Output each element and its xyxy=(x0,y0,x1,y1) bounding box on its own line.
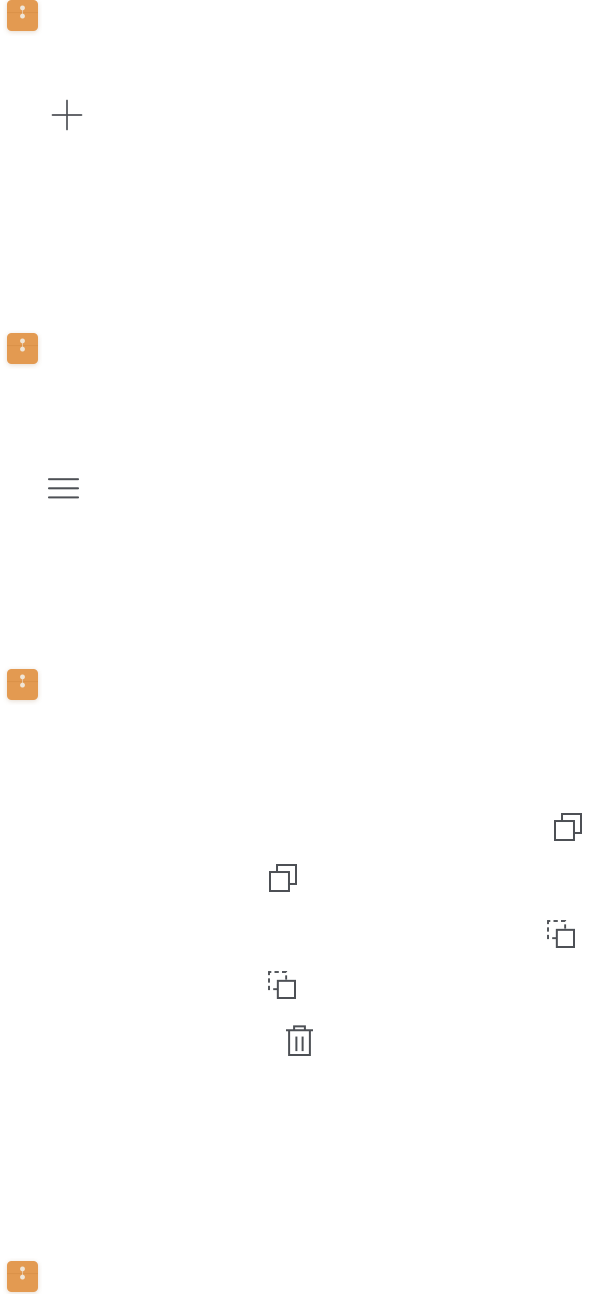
button[interactable]: Duplicate xyxy=(555,814,581,840)
button[interactable]: Archive xyxy=(7,669,38,700)
button[interactable]: Archive xyxy=(7,333,38,364)
button[interactable]: Paste xyxy=(269,972,295,998)
button[interactable]: Add xyxy=(52,100,81,129)
button[interactable]: Archive xyxy=(7,1261,38,1292)
button[interactable]: Paste xyxy=(548,921,574,947)
button[interactable]: Archive xyxy=(7,0,38,31)
button[interactable]: Duplicate xyxy=(270,865,296,891)
button[interactable]: Delete xyxy=(286,1025,313,1055)
button[interactable]: Menu xyxy=(49,479,78,497)
